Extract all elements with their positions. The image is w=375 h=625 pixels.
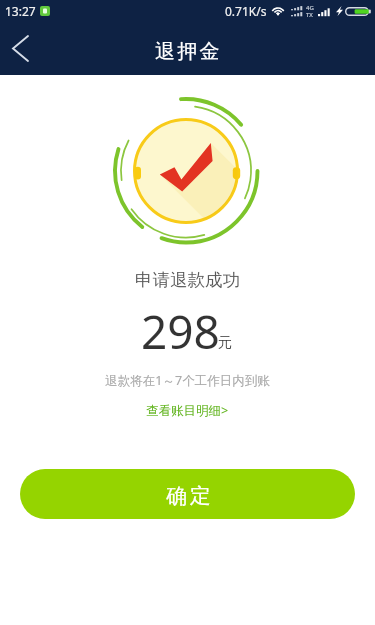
staticText: 退款将在1～7个工作日内到账 <box>0 372 375 389</box>
staticText: 0.71K/s <box>225 3 267 19</box>
staticText: 298 <box>141 300 220 363</box>
staticText: 13:27 <box>5 3 36 19</box>
staticText: 退押金 <box>155 39 222 64</box>
staticText: 4G <box>306 4 314 12</box>
staticText: 元 <box>218 334 232 352</box>
staticText: 确定 <box>165 483 212 509</box>
button[interactable]: 确定 <box>20 469 355 519</box>
staticText: 申请退款成功 <box>0 269 375 291</box>
button[interactable]: 查看账目明细> <box>136 399 239 422</box>
button[interactable]: Back <box>0 22 44 75</box>
staticText: TX <box>306 11 313 19</box>
